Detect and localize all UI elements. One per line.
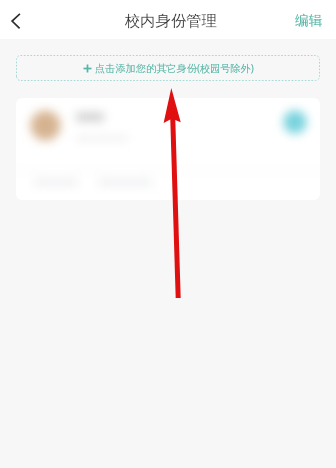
staticText: 校内身份管理 (125, 11, 217, 30)
button[interactable]: 点击添加您的其它身份(校园号除外) (16, 55, 320, 81)
staticText: 编辑 (295, 12, 323, 29)
button[interactable]: 编辑 (279, 3, 336, 36)
staticText: 点击添加您的其它身份(校园号除外) (95, 61, 254, 75)
button[interactable] (16, 98, 320, 200)
button[interactable]: Back (0, 0, 33, 39)
